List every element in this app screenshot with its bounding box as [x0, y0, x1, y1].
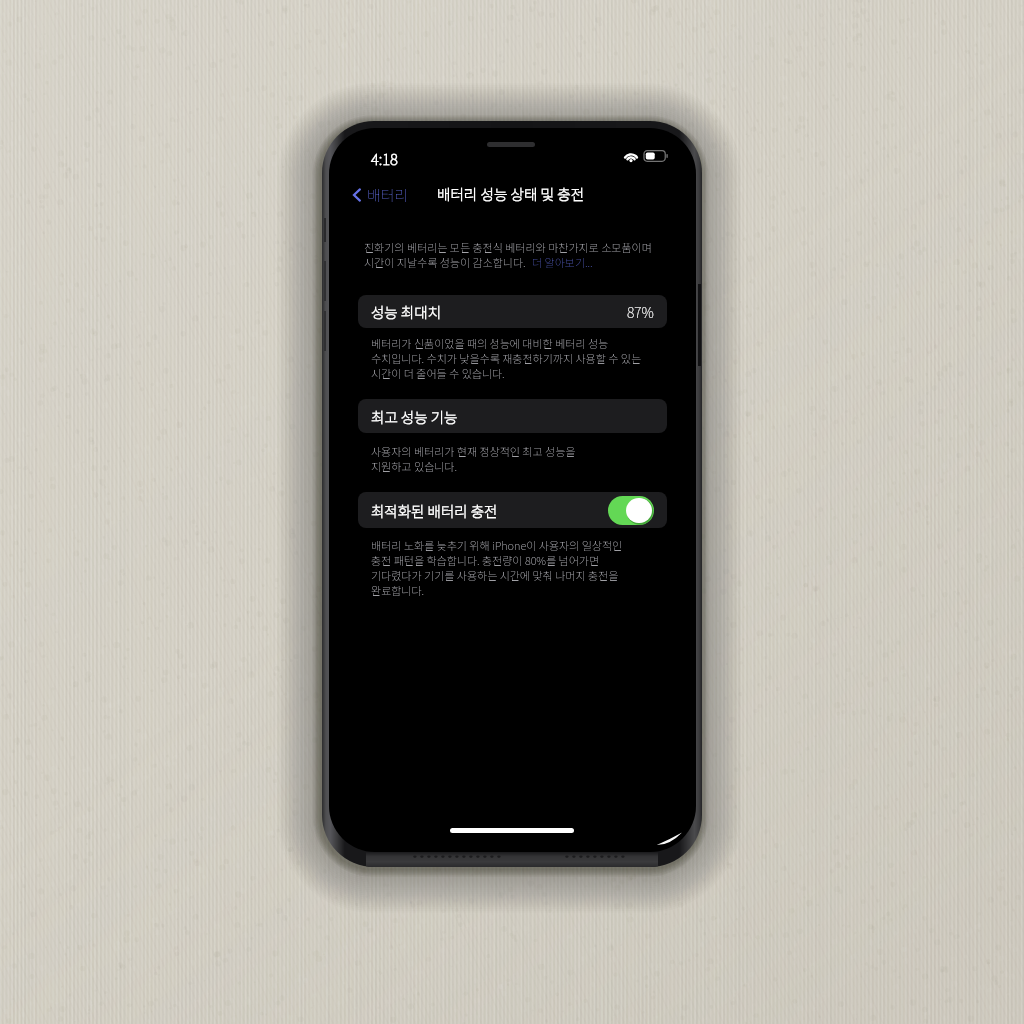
button[interactable]: 더 알아보기...	[532, 254, 593, 270]
button[interactable]: 최고 성능 기능	[358, 399, 667, 433]
button[interactable]: 성능 최대치	[358, 295, 667, 328]
button[interactable]: 최적화된 배터리 충전	[358, 492, 667, 528]
staticText: 87%	[627, 302, 654, 322]
staticText: 진화기의 베터리는 모든 충전식 베터리와 마찬가지로 소모품이며 시간이 지날…	[364, 239, 674, 271]
staticText: 최적화된 배터리 충전	[371, 500, 498, 521]
staticText: 4:18	[371, 148, 398, 170]
staticText: 배터리 노화를 늦추기 위해 iPhone이 사용자의 일상적인 충전 패턴을 …	[371, 537, 671, 598]
staticText: 베터리가 신품이었을 때의 성능에 대비한 베터리 성능 수치입니다. 수치가 …	[371, 335, 671, 381]
staticText: 배터리	[367, 184, 409, 206]
staticText: 사용자의 베터리가 현재 정상적인 최고 성능을 지원하고 있습니다.	[371, 443, 671, 474]
staticText: 성능 최대치	[371, 301, 441, 322]
button[interactable]: Back to Battery	[351, 182, 411, 208]
button[interactable]: Optimized battery charging toggle	[608, 496, 654, 525]
staticText: 최고 성능 기능	[371, 406, 458, 427]
staticText: 배터리 성능 상태 및 충전	[437, 183, 585, 204]
